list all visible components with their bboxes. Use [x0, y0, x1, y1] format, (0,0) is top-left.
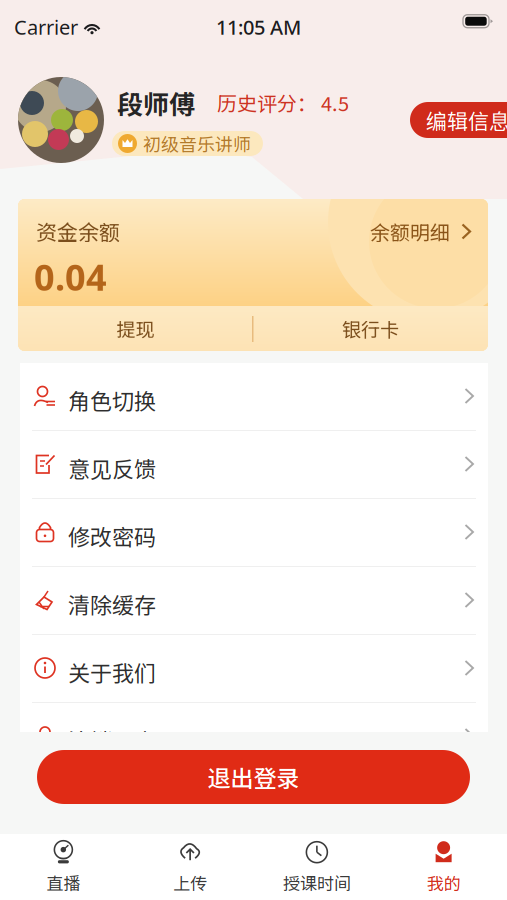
staticText: 提现 — [116, 315, 154, 342]
staticText: 直播 — [46, 870, 80, 895]
staticText: 11:05 AM — [216, 14, 301, 40]
button[interactable]: 授课时间 — [253, 834, 380, 900]
button[interactable]: 提现 — [18, 306, 253, 351]
button[interactable]: 我的 — [380, 834, 507, 900]
staticText: 关于我们 — [68, 656, 156, 688]
staticText: 编辑信息 — [426, 105, 507, 135]
button[interactable]: 上传 — [127, 834, 254, 900]
button[interactable]: 直播 — [0, 834, 127, 900]
staticText: Carrier — [14, 14, 78, 40]
staticText: 银行卡 — [342, 315, 399, 342]
button[interactable]: 余额明细 — [370, 217, 472, 246]
button[interactable]: 修改密码 — [20, 499, 488, 566]
staticText: 授课时间 — [283, 870, 351, 895]
staticText: 注销用户 — [68, 724, 156, 756]
staticText: 角色切换 — [68, 384, 156, 416]
button[interactable]: 编辑信息 — [410, 102, 507, 138]
staticText: 资金余额 — [36, 216, 120, 246]
staticText: 意见反馈 — [68, 452, 156, 484]
button[interactable]: 意见反馈 — [20, 431, 488, 498]
staticText: 段师傅 — [117, 84, 195, 122]
button[interactable]: 关于我们 — [20, 635, 488, 702]
button[interactable]: 清除缓存 — [20, 567, 488, 634]
staticText: 我的 — [427, 870, 461, 895]
button[interactable]: 退出登录 — [37, 750, 470, 804]
staticText: 0.04 — [34, 253, 107, 301]
button[interactable]: 角色切换 — [20, 363, 488, 430]
button[interactable]: 银行卡 — [253, 306, 488, 351]
staticText: 初级音乐讲师 — [143, 130, 251, 157]
staticText: 修改密码 — [68, 520, 156, 552]
staticText: 退出登录 — [207, 760, 299, 794]
staticText: 清除缓存 — [68, 588, 156, 620]
staticText: 余额明细 — [370, 217, 450, 246]
button[interactable]: 注销用户 — [20, 703, 488, 770]
staticText: 历史评分： 4.5 — [217, 88, 349, 117]
staticText: 上传 — [173, 870, 207, 895]
